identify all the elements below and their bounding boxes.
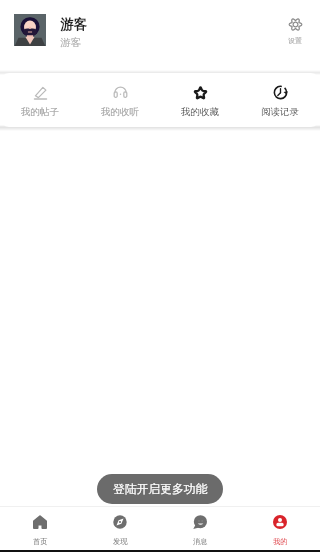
button[interactable]: 我的收藏	[160, 73, 240, 127]
staticText: 发现	[113, 537, 128, 546]
button[interactable]: 我的帖子	[0, 73, 80, 127]
staticText: 阅读记录	[261, 106, 299, 118]
staticText: 登陆开启更多功能	[113, 482, 208, 497]
button[interactable]: 头像	[14, 14, 46, 46]
staticText: 消息	[193, 537, 208, 546]
button[interactable]: 消息	[160, 507, 240, 550]
staticText: 游客	[60, 36, 81, 49]
staticText: 我的帖子	[21, 106, 59, 118]
button[interactable]: 我的收听	[80, 73, 160, 127]
button[interactable]: 登陆开启更多功能	[97, 474, 223, 504]
staticText: 设置	[288, 36, 302, 45]
staticText: 首页	[33, 537, 48, 546]
staticText: 我的收听	[101, 106, 139, 118]
button[interactable]: 发现	[80, 507, 160, 550]
staticText: 我的	[273, 537, 288, 546]
staticText: 游客	[60, 16, 87, 33]
button[interactable]: 设置	[280, 17, 310, 45]
button[interactable]: 我的	[240, 507, 320, 550]
button[interactable]: 首页	[0, 507, 80, 550]
staticText: 我的收藏	[181, 106, 219, 118]
button[interactable]: 阅读记录	[240, 73, 320, 127]
